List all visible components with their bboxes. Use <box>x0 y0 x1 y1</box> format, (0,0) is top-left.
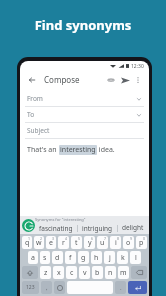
staticText: To <box>27 110 35 119</box>
staticText: 9 <box>130 236 133 241</box>
button[interactable]: r <box>58 236 69 249</box>
button[interactable]: f <box>65 251 76 264</box>
button[interactable]: h <box>91 251 102 264</box>
staticText: 3 <box>52 236 55 241</box>
button[interactable]: b <box>92 266 103 279</box>
staticText: d <box>55 253 60 263</box>
button[interactable]: Back <box>25 73 39 87</box>
staticText: 123 <box>26 284 35 291</box>
button[interactable]: n <box>105 266 116 279</box>
staticText: 12:30 <box>131 63 144 70</box>
button[interactable]: Enter <box>128 281 147 294</box>
button[interactable]: Emoji <box>54 281 65 294</box>
staticText: Subject <box>27 126 50 135</box>
staticText: , <box>46 284 48 292</box>
staticText: z <box>44 268 48 278</box>
staticText: w <box>36 238 42 248</box>
button[interactable]: t <box>71 236 82 249</box>
button[interactable]: Period <box>115 281 126 294</box>
staticText: v <box>83 268 87 278</box>
staticText: f <box>69 253 72 263</box>
button[interactable]: Shift <box>22 266 38 279</box>
button[interactable]: k <box>117 251 128 264</box>
button[interactable]: Send <box>118 73 132 87</box>
staticText: l <box>135 253 137 263</box>
button[interactable]: z <box>40 266 51 279</box>
staticText: . <box>120 284 122 292</box>
button[interactable]: j <box>104 251 115 264</box>
staticText: Synonyms for "interesting" <box>35 217 86 222</box>
staticText: j <box>109 253 111 263</box>
staticText: 5 <box>78 236 81 241</box>
staticText: g <box>81 253 86 263</box>
button[interactable]: y <box>84 236 95 249</box>
staticText: i <box>115 238 117 248</box>
button[interactable]: q <box>22 236 32 249</box>
button[interactable]: i <box>110 236 121 249</box>
staticText: 6 <box>91 236 94 241</box>
staticText: p <box>139 238 144 248</box>
button[interactable]: m <box>118 266 129 279</box>
staticText: s <box>43 253 47 263</box>
staticText: c <box>70 268 74 278</box>
staticText: e <box>49 238 53 248</box>
staticText: That's an <box>27 145 59 155</box>
staticText: Find synonyms <box>0 16 166 34</box>
staticText: 1 <box>28 236 31 241</box>
button[interactable]: g <box>78 251 89 264</box>
button[interactable]: Backspace <box>131 266 147 279</box>
staticText: 4 <box>65 236 68 241</box>
button[interactable]: u <box>97 236 108 249</box>
staticText: a <box>31 253 35 263</box>
staticText: x <box>57 268 61 278</box>
button[interactable]: intriguing <box>78 224 117 233</box>
button[interactable]: Subject <box>20 123 149 139</box>
button[interactable]: e <box>46 236 56 249</box>
staticText: q <box>25 238 30 248</box>
button[interactable]: x <box>53 266 64 279</box>
button[interactable]: w <box>34 236 44 249</box>
staticText: k <box>121 253 125 263</box>
button[interactable]: v <box>79 266 90 279</box>
staticText: intriguing <box>82 224 113 233</box>
staticText: o <box>126 238 131 248</box>
button[interactable]: c <box>66 266 77 279</box>
button[interactable]: a <box>28 251 38 264</box>
button[interactable]: To <box>20 107 149 123</box>
staticText: u <box>100 238 105 248</box>
staticText: 8 <box>117 236 120 241</box>
staticText: 2 <box>40 236 43 241</box>
button[interactable]: fascinating <box>35 224 77 233</box>
staticText: m <box>120 268 127 278</box>
staticText: delightful <box>122 223 145 234</box>
button[interactable]: Numbers <box>22 281 39 294</box>
button[interactable]: More options <box>132 74 144 86</box>
staticText: From <box>27 94 43 103</box>
button[interactable]: s <box>40 251 50 264</box>
button[interactable]: Grammarly <box>22 219 35 232</box>
staticText: t <box>75 238 78 248</box>
button[interactable]: Comma <box>41 281 52 294</box>
button[interactable]: d <box>52 251 63 264</box>
staticText: interesting <box>60 145 96 155</box>
staticText: h <box>94 253 99 263</box>
staticText: Compose <box>44 74 80 85</box>
button[interactable]: delightful <box>118 223 149 234</box>
staticText: 7 <box>104 236 107 241</box>
staticText: n <box>108 268 113 278</box>
staticText: r <box>62 238 65 248</box>
staticText: b <box>95 268 100 278</box>
staticText: fascinating <box>39 224 73 233</box>
button[interactable]: Space <box>67 281 113 294</box>
button[interactable]: p <box>136 236 147 249</box>
button[interactable]: l <box>130 251 141 264</box>
staticText: 0 <box>143 236 146 241</box>
button[interactable]: o <box>123 236 134 249</box>
button[interactable]: Attach file <box>104 73 118 87</box>
staticText: idea. <box>97 145 115 155</box>
staticText: y <box>88 238 92 248</box>
button[interactable]: From <box>20 91 149 107</box>
